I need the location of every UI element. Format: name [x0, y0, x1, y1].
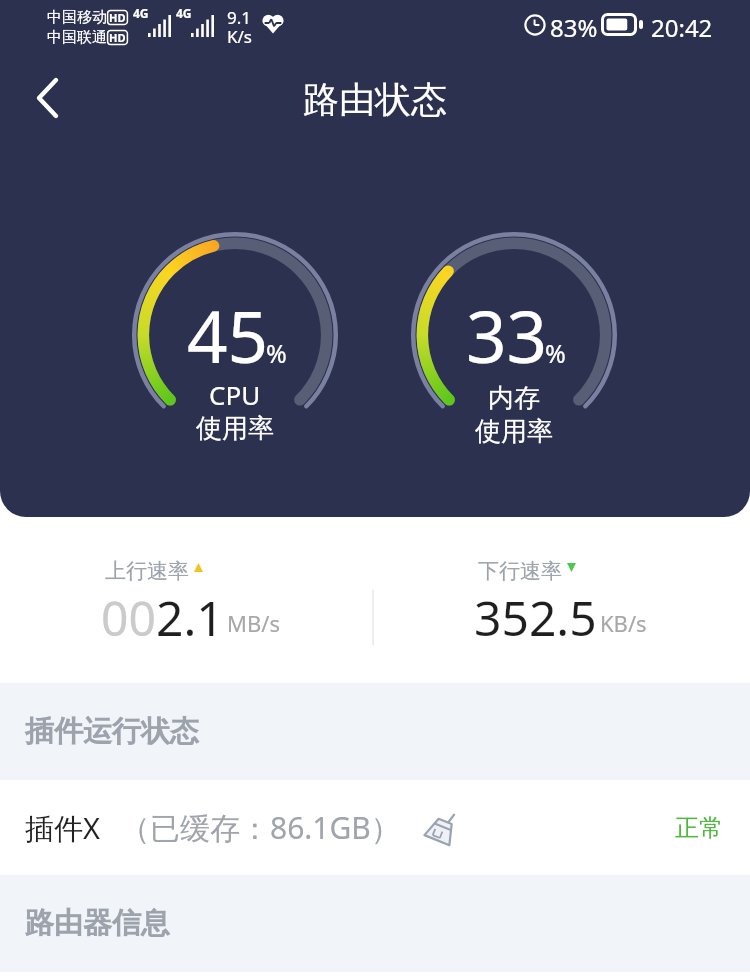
staticText: 4G	[133, 5, 149, 21]
staticText: %	[266, 336, 287, 370]
staticText: 00	[101, 585, 156, 650]
staticText: CPU	[209, 377, 261, 412]
staticText: K/s	[227, 25, 252, 48]
staticText: 83%	[550, 11, 598, 44]
staticText: %	[545, 336, 566, 370]
staticText: 使用率	[196, 412, 274, 445]
staticText: MB/s	[227, 608, 280, 638]
staticText: 20:42	[651, 11, 713, 44]
staticText: 内存	[488, 382, 540, 415]
staticText: （已缓存：86.1GB）	[120, 807, 401, 848]
staticText: 中国联通	[47, 28, 107, 47]
staticText: 路由状态	[303, 77, 447, 122]
staticText: 正常	[675, 813, 723, 843]
staticText: 下行速率	[478, 558, 562, 584]
staticText: 352.5	[474, 585, 597, 650]
staticText: 33	[466, 287, 548, 384]
staticText: 9.1	[227, 6, 252, 29]
staticText: HD	[109, 30, 126, 45]
staticText: KB/s	[600, 608, 647, 638]
staticText: 上行速率	[105, 558, 189, 584]
staticText: HD	[109, 10, 126, 25]
staticText: 2.1	[156, 585, 224, 650]
other: Clear cache	[424, 812, 456, 843]
staticText: 使用率	[475, 415, 553, 448]
staticText: 45	[187, 287, 269, 384]
staticText: 路由器信息	[25, 905, 170, 942]
staticText: 4G	[176, 5, 192, 21]
staticText: 插件X	[25, 808, 100, 848]
staticText: 插件运行状态	[25, 713, 199, 750]
staticText: 中国移动	[47, 8, 107, 27]
button[interactable]: 插件X	[0, 780, 750, 875]
button[interactable]: Back	[18, 69, 76, 127]
